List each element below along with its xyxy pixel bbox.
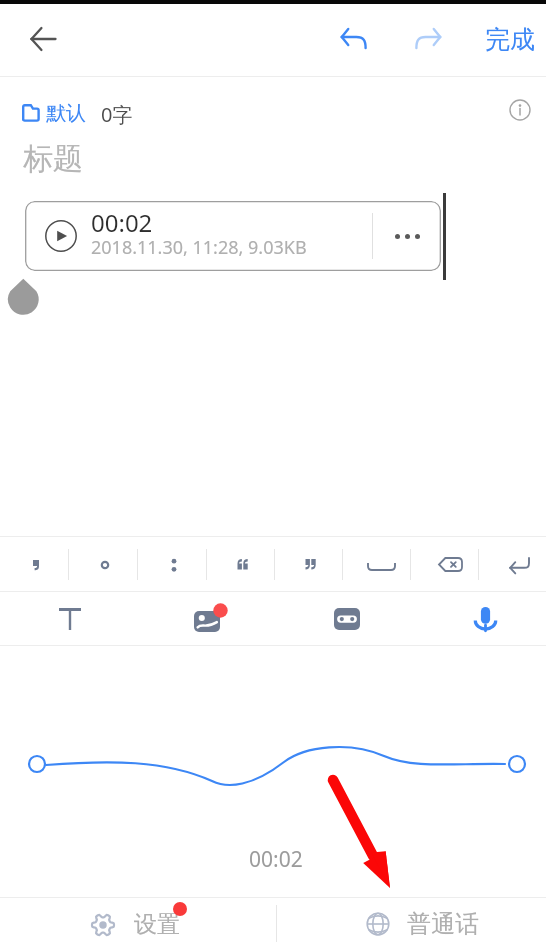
button[interactable]: Text style	[0, 592, 136, 645]
button[interactable]: Undo	[327, 13, 379, 65]
button[interactable]: 完成	[478, 13, 542, 65]
button[interactable]	[69, 537, 137, 591]
button[interactable]: Backspace	[411, 537, 478, 591]
staticText: 标题	[23, 140, 83, 178]
button[interactable]	[0, 537, 68, 591]
staticText: 2018.11.30, 11:28, 9.03KB	[91, 235, 307, 260]
button[interactable]: 00:02	[25, 201, 441, 271]
staticText: 完成	[485, 24, 535, 55]
button[interactable]: Voice input	[409, 592, 546, 645]
button[interactable]: More options	[373, 201, 441, 271]
staticText: 默认	[46, 101, 86, 126]
staticText: 0字	[101, 101, 133, 128]
button[interactable]: Recorder	[272, 592, 409, 645]
button[interactable]: Back	[17, 13, 69, 65]
staticText: 普通话	[407, 909, 479, 939]
staticText: 00:02	[91, 206, 153, 239]
button[interactable]	[207, 537, 274, 591]
button[interactable]: Redo	[403, 13, 455, 65]
button[interactable]: Insert image	[136, 592, 272, 645]
button[interactable]	[138, 537, 206, 591]
button[interactable]: Info	[498, 88, 542, 132]
button[interactable]: 设置	[0, 898, 276, 942]
button[interactable]: Enter	[479, 537, 546, 591]
staticText: 设置	[134, 910, 180, 939]
button[interactable]: 普通话	[277, 898, 546, 942]
button[interactable]: Space	[343, 537, 410, 591]
button[interactable]	[275, 537, 342, 591]
staticText: 00:02	[249, 845, 303, 874]
button[interactable]: 默认	[46, 101, 86, 126]
